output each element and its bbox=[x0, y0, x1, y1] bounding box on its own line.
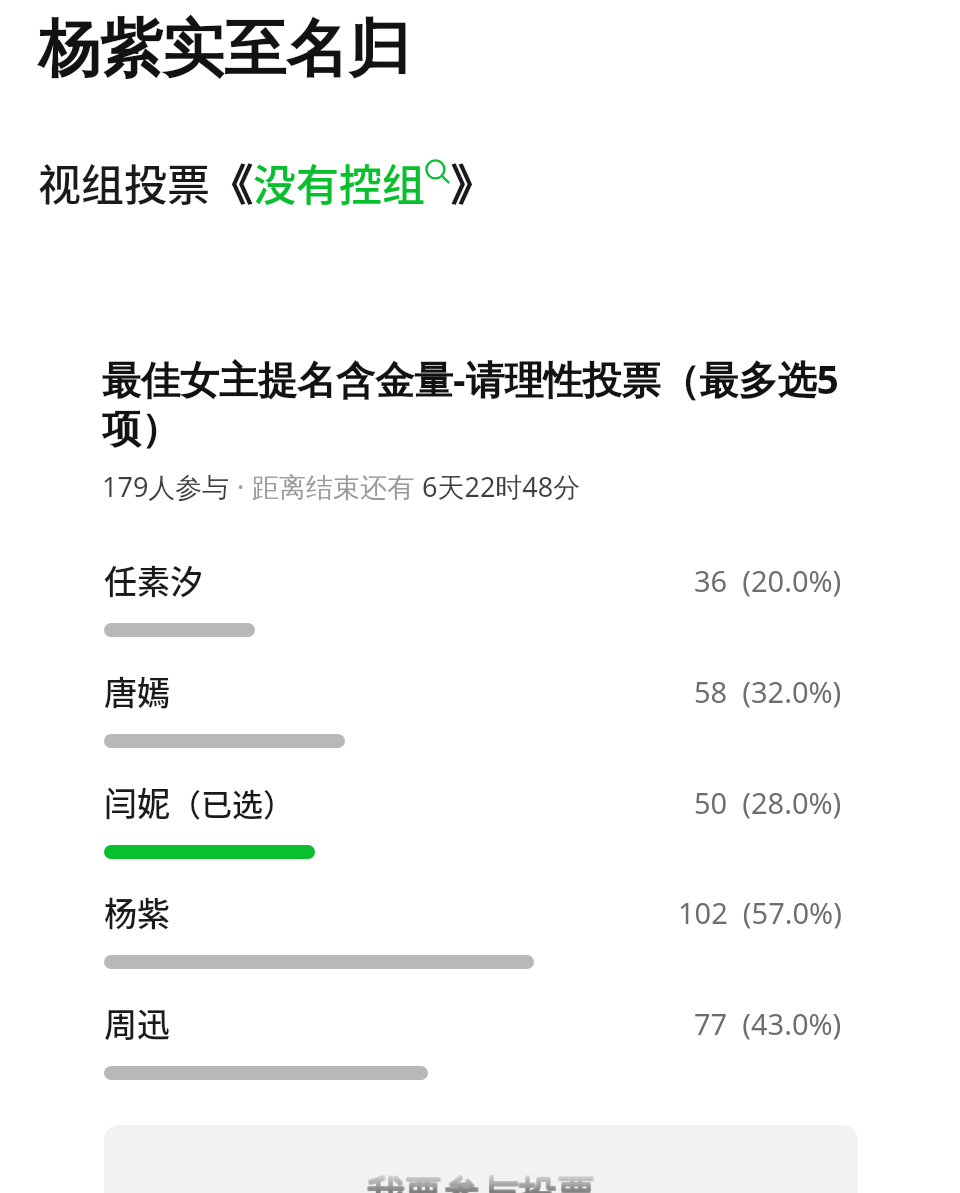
button[interactable]: 闫妮 bbox=[104, 778, 858, 878]
button[interactable]: 我要参与投票 bbox=[104, 1125, 858, 1193]
button[interactable]: 杨紫 bbox=[104, 888, 858, 988]
staticText: 77 (43.0%) bbox=[694, 1004, 842, 1043]
staticText: 唐嫣 bbox=[104, 667, 170, 715]
staticText: 我要参与投票 bbox=[367, 1170, 595, 1193]
staticText: 我要参与投票 bbox=[367, 1171, 595, 1193]
staticText: 我要参与投票 bbox=[367, 1169, 595, 1193]
button[interactable]: 唐嫣 bbox=[104, 667, 858, 767]
staticText: 闫妮 bbox=[104, 778, 170, 826]
staticText: 我要参与投票 bbox=[366, 1171, 594, 1193]
staticText: 》 bbox=[451, 151, 494, 213]
other: Search bbox=[425, 160, 451, 186]
staticText: 36 (20.0%) bbox=[694, 561, 842, 600]
button[interactable]: 任素汐 bbox=[104, 556, 858, 656]
staticText: 我要参与投票 bbox=[368, 1170, 596, 1193]
staticText: 杨紫 bbox=[104, 888, 170, 936]
staticText: 6天22时48分 bbox=[422, 468, 581, 505]
staticText: 50 (28.0%) bbox=[694, 783, 842, 822]
staticText: 最佳女主提名含金量-请理性投票（最多选5项） bbox=[102, 352, 862, 453]
staticText: 任素汐 bbox=[104, 556, 203, 604]
staticText: 102 (57.0%) bbox=[678, 893, 842, 932]
staticText: 距离结束还有 bbox=[252, 468, 422, 505]
staticText: 我要参与投票 bbox=[366, 1172, 594, 1193]
staticText: 我要参与投票 bbox=[368, 1172, 596, 1193]
staticText: 杨紫实至名归 bbox=[38, 10, 410, 88]
staticText: 我要参与投票 bbox=[366, 1169, 594, 1193]
staticText: 我要参与投票 bbox=[366, 1170, 594, 1193]
staticText: 我要参与投票 bbox=[367, 1172, 595, 1193]
staticText: · bbox=[230, 468, 252, 505]
button[interactable]: 周迅 bbox=[104, 999, 858, 1099]
staticText: 我要参与投票 bbox=[368, 1171, 596, 1193]
staticText: 我要参与投票 bbox=[368, 1169, 596, 1193]
button[interactable]: 视组投票《没有控组 bbox=[38, 151, 494, 213]
staticText: 周迅 bbox=[104, 999, 170, 1047]
staticText: 179人参与 bbox=[102, 468, 230, 505]
staticText: 58 (32.0%) bbox=[694, 672, 842, 711]
staticText: （已选） bbox=[170, 780, 294, 825]
staticText: 视组投票《没有控组 bbox=[38, 151, 425, 213]
